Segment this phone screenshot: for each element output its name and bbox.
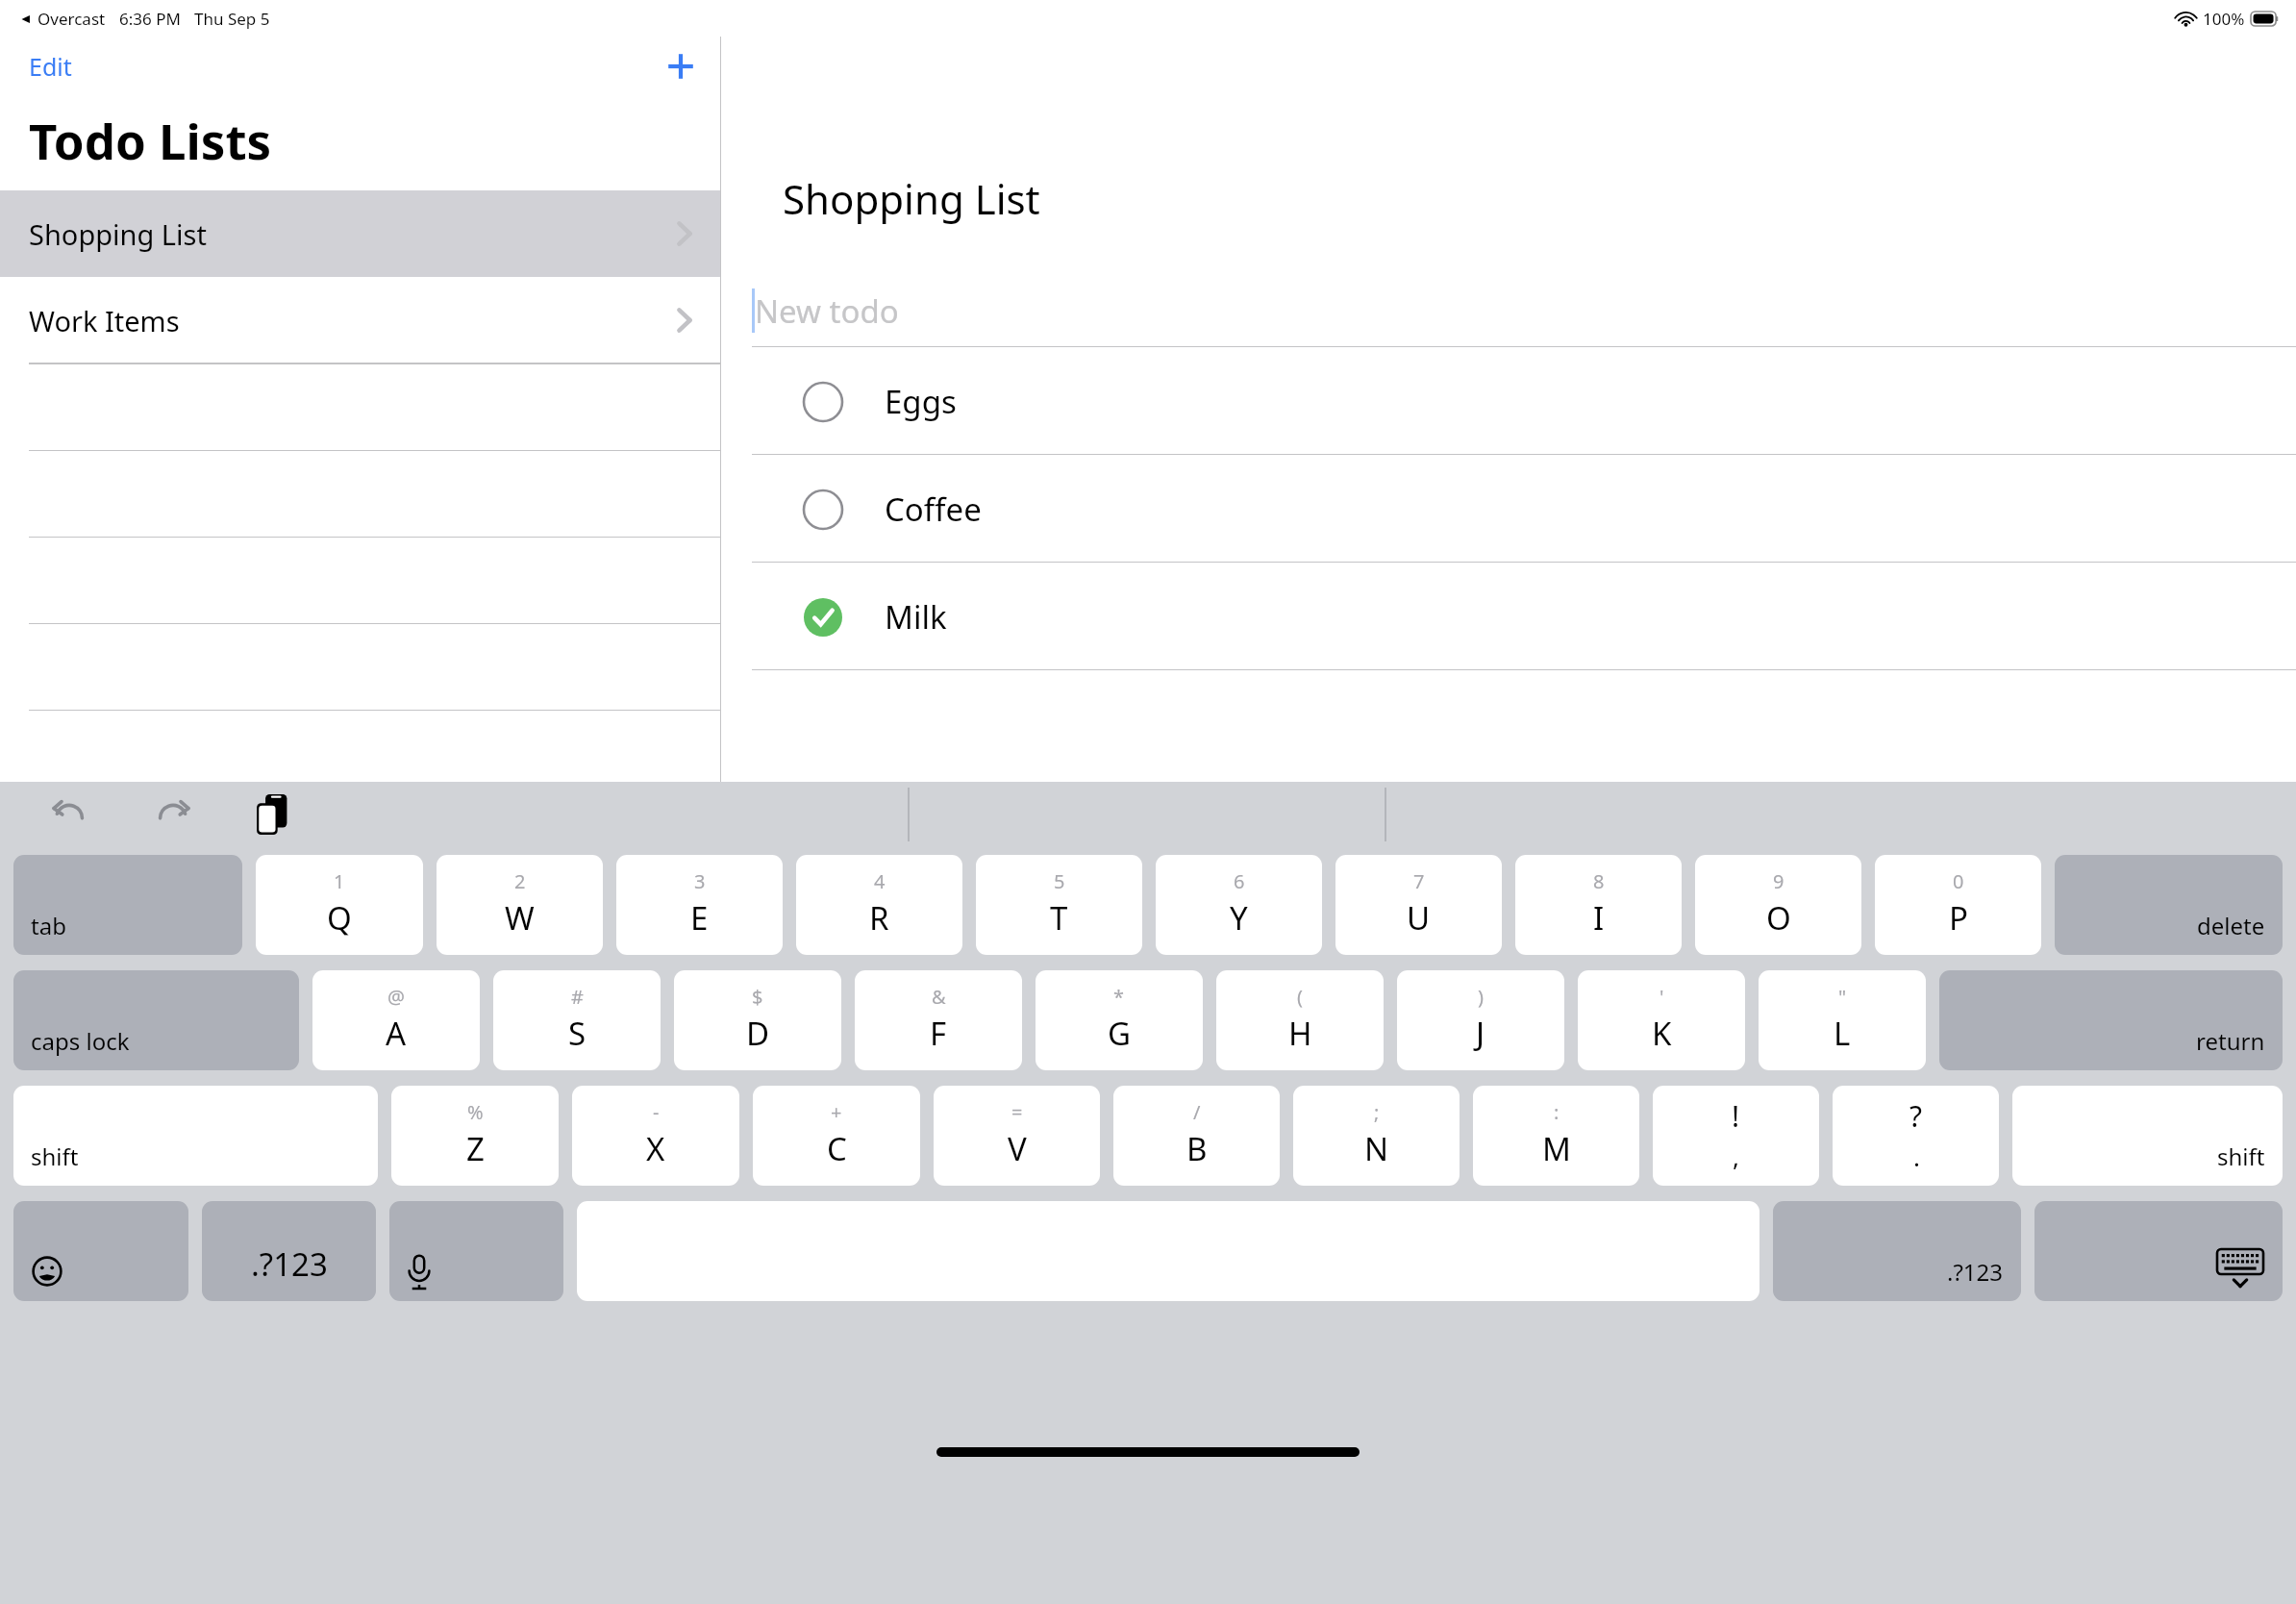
button[interactable]: = xyxy=(934,1086,1100,1186)
staticText: A xyxy=(386,1012,407,1055)
button[interactable]: Coffee xyxy=(721,455,2296,563)
staticText: New todo xyxy=(755,289,899,333)
button[interactable]: : xyxy=(1473,1086,1639,1186)
button[interactable]: 9 xyxy=(1695,855,1861,955)
staticText: Y xyxy=(1230,896,1248,940)
button[interactable]: 0 xyxy=(1875,855,2041,955)
staticText: H xyxy=(1288,1012,1312,1055)
staticText: M xyxy=(1542,1127,1571,1170)
button[interactable]: 5 xyxy=(976,855,1142,955)
button[interactable]: New todo xyxy=(721,274,2296,347)
button[interactable]: $ xyxy=(674,970,841,1070)
button[interactable]: ? xyxy=(1833,1086,1999,1186)
button[interactable]: ; xyxy=(1293,1086,1460,1186)
button[interactable]: 4 xyxy=(796,855,962,955)
staticText: Coffee xyxy=(885,488,982,531)
button[interactable]: return xyxy=(1939,970,2283,1070)
staticText: W xyxy=(505,896,535,940)
staticText: P xyxy=(1949,896,1968,940)
button[interactable]: & xyxy=(855,970,1022,1070)
button[interactable]: Milk xyxy=(721,563,2296,670)
staticText: * xyxy=(1113,984,1125,1010)
button[interactable]: / xyxy=(1113,1086,1280,1186)
staticText: / xyxy=(1193,1099,1201,1125)
button[interactable]: % xyxy=(391,1086,559,1186)
button[interactable]: .?123 xyxy=(202,1201,376,1301)
staticText: 8 xyxy=(1593,868,1605,894)
button[interactable]: 7 xyxy=(1335,855,1502,955)
staticText: . xyxy=(1913,1140,1920,1173)
button[interactable]: 8 xyxy=(1515,855,1682,955)
button[interactable]: shift xyxy=(13,1086,378,1186)
button[interactable]: Edit xyxy=(0,42,101,90)
button[interactable]: ( xyxy=(1216,970,1384,1070)
staticText: Edit xyxy=(29,50,72,83)
staticText: , xyxy=(1733,1140,1739,1173)
button[interactable]: 3 xyxy=(616,855,783,955)
staticText: @ xyxy=(387,984,405,1010)
staticText: X xyxy=(646,1127,665,1170)
button[interactable]: ) xyxy=(1397,970,1564,1070)
button[interactable]: 1 xyxy=(256,855,423,955)
staticText: 2 xyxy=(514,868,526,894)
button[interactable]: Hide keyboard xyxy=(2034,1201,2283,1301)
staticText: U xyxy=(1407,896,1431,940)
button[interactable]: tab xyxy=(13,855,242,955)
staticText: T xyxy=(1050,896,1068,940)
staticText: ! xyxy=(1732,1096,1740,1136)
staticText: ' xyxy=(1660,984,1664,1010)
button[interactable]: ! xyxy=(1653,1086,1819,1186)
staticText: 7 xyxy=(1413,868,1425,894)
button[interactable]: Undo xyxy=(40,789,98,840)
button[interactable]: shift xyxy=(2012,1086,2283,1186)
button[interactable]: Redo xyxy=(144,789,202,840)
button[interactable]: Emoji xyxy=(13,1201,188,1301)
staticText: # xyxy=(571,984,584,1010)
button[interactable]: - xyxy=(572,1086,739,1186)
staticText: 9 xyxy=(1773,868,1784,894)
staticText: return xyxy=(2196,1025,2265,1057)
staticText: O xyxy=(1766,896,1791,940)
button[interactable]: * xyxy=(1036,970,1203,1070)
button[interactable]: Space xyxy=(577,1201,1759,1301)
button[interactable]: Add list xyxy=(640,43,721,89)
button[interactable]: 6 xyxy=(1156,855,1322,955)
staticText: $ xyxy=(752,984,763,1010)
staticText: Z xyxy=(466,1127,485,1170)
button[interactable]: caps lock xyxy=(13,970,299,1070)
button[interactable]: delete xyxy=(2055,855,2283,955)
staticText: 0 xyxy=(1953,868,1964,894)
staticText: Thu Sep 5 xyxy=(194,8,270,30)
staticText: L xyxy=(1834,1012,1851,1055)
staticText: S xyxy=(568,1012,586,1055)
staticText: 1 xyxy=(334,868,345,894)
staticText: " xyxy=(1838,984,1847,1010)
button[interactable]: Work Items xyxy=(0,277,721,363)
staticText: Overcast xyxy=(37,8,106,30)
staticText: N xyxy=(1364,1127,1389,1170)
button[interactable]: Eggs xyxy=(721,347,2296,455)
staticText: K xyxy=(1652,1012,1672,1055)
staticText: V xyxy=(1008,1127,1027,1170)
staticText: : xyxy=(1554,1099,1560,1125)
staticText: G xyxy=(1108,1012,1132,1055)
button[interactable]: Dictation xyxy=(389,1201,563,1301)
button[interactable]: ' xyxy=(1578,970,1745,1070)
staticText: Todo Lists xyxy=(29,107,272,173)
button[interactable]: # xyxy=(493,970,661,1070)
staticText: + xyxy=(831,1099,842,1125)
button[interactable]: @ xyxy=(312,970,480,1070)
button[interactable]: " xyxy=(1759,970,1926,1070)
staticText: J xyxy=(1476,1012,1485,1055)
button[interactable]: .?123 xyxy=(1773,1201,2021,1301)
staticText: 5 xyxy=(1054,868,1065,894)
button[interactable]: Shopping List xyxy=(0,190,721,277)
staticText: shift xyxy=(2217,1140,2265,1172)
staticText: Milk xyxy=(885,595,947,639)
button[interactable]: + xyxy=(753,1086,920,1186)
staticText: ( xyxy=(1297,984,1303,1010)
staticText: .?123 xyxy=(1947,1256,2004,1288)
button[interactable]: Paste xyxy=(248,787,298,842)
button[interactable]: 2 xyxy=(437,855,603,955)
staticText: 100% xyxy=(2203,8,2245,30)
